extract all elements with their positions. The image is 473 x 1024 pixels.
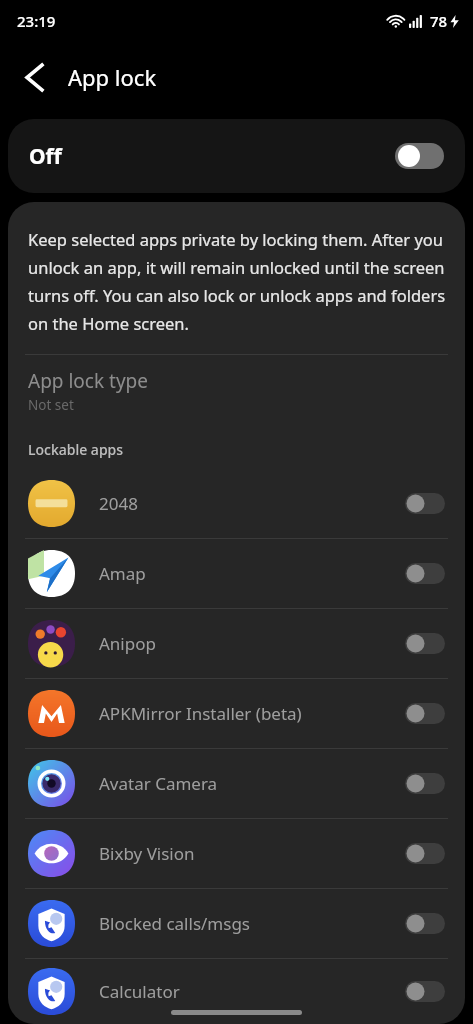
button[interactable]: 2048 <box>8 469 465 538</box>
staticText: Keep selected apps private by locking th… <box>28 228 449 335</box>
button[interactable]: APKMirror Installer (beta) <box>8 679 465 748</box>
staticText: APKMirror Installer (beta) <box>99 702 405 725</box>
staticText: Avatar Camera <box>99 772 405 795</box>
button[interactable]: Off <box>8 119 465 193</box>
staticText: Lockable apps <box>28 440 124 459</box>
button[interactable]: Amap <box>8 539 465 608</box>
staticText: Anipop <box>99 632 405 655</box>
staticText: Calculator <box>99 980 405 1003</box>
staticText: 2048 <box>99 492 405 515</box>
staticText: Off <box>29 142 62 171</box>
button[interactable]: Bixby Vision <box>8 819 465 888</box>
button[interactable]: Anipop <box>8 609 465 678</box>
staticText: App lock <box>68 62 157 92</box>
staticText: Blocked calls/msgs <box>99 912 405 935</box>
button[interactable]: Blocked calls/msgs <box>8 889 465 958</box>
button[interactable]: App lock type <box>8 355 465 420</box>
staticText: 78 <box>430 11 448 31</box>
staticText: Amap <box>99 562 405 585</box>
staticText: App lock type <box>28 368 149 394</box>
staticText: Not set <box>28 396 74 414</box>
button[interactable]: Calculator <box>8 959 465 1024</box>
staticText: 23:19 <box>17 11 56 31</box>
staticText: Bixby Vision <box>99 842 405 865</box>
button[interactable]: Avatar Camera <box>8 749 465 818</box>
button[interactable]: Back <box>12 55 56 99</box>
